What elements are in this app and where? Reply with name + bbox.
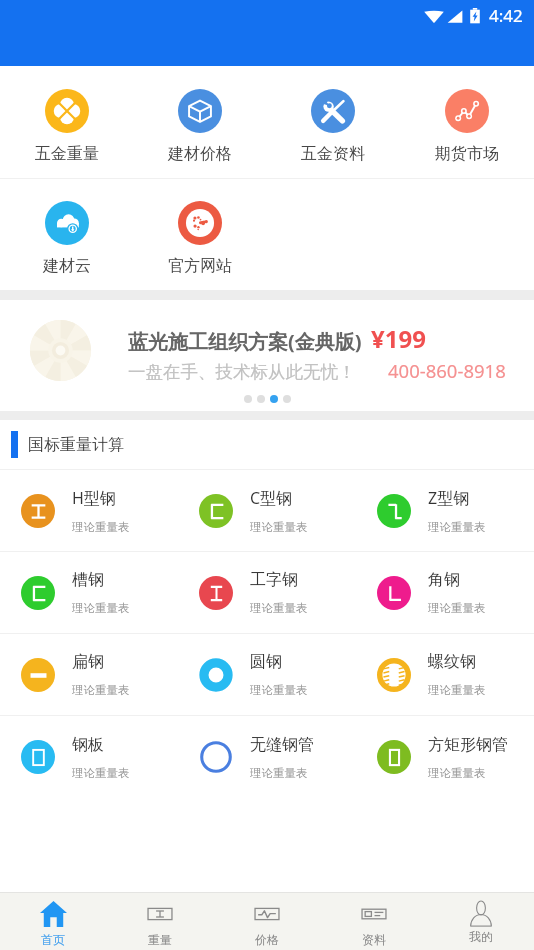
staticText: 理论重量表 [428,683,486,697]
staticText: 国标重量计算 [28,435,124,455]
staticText: 理论重量表 [72,601,130,615]
button[interactable]: 五金重量 [0,66,133,164]
button[interactable]: H型钢 [0,470,178,551]
staticText: Z型钢 [428,487,470,509]
button[interactable]: 槽钢 [0,552,178,633]
staticText: C型钢 [250,487,293,509]
staticText: 无缝钢管 [250,735,314,755]
staticText: ¥199 [371,322,426,355]
staticText: 角钢 [428,570,460,590]
staticText: 4:42 [489,4,523,27]
staticText: 重量 [148,932,172,947]
button[interactable]: 圆钢 [178,634,356,715]
staticText: 槽钢 [72,570,104,590]
button[interactable]: 首页 [0,893,106,950]
staticText: 建材云 [43,256,91,276]
staticText: 圆钢 [250,652,282,672]
staticText: 期货市场 [435,144,499,164]
staticText: 蓝光施工组织方案(金典版) [128,328,362,355]
staticText: 首页 [41,932,65,947]
button[interactable]: 扁钢 [0,634,178,715]
button[interactable]: 资料 [320,893,427,950]
staticText: 理论重量表 [72,520,130,534]
staticText: 理论重量表 [250,683,308,697]
staticText: 一盘在手、技术标从此无忧！ [128,361,356,383]
button[interactable]: 期货市场 [400,66,534,164]
button[interactable]: 重量 [106,893,213,950]
button[interactable]: 工字钢 [178,552,356,633]
staticText: 五金资料 [301,144,365,164]
button[interactable]: 方矩形钢管 [356,716,534,798]
staticText: 400-860-8918 [388,358,506,383]
staticText: 建材价格 [168,144,232,164]
button[interactable]: 五金资料 [266,66,400,164]
staticText: 方矩形钢管 [428,735,508,755]
staticText: 理论重量表 [72,683,130,697]
staticText: 官方网站 [168,256,232,276]
staticText: 理论重量表 [250,601,308,615]
staticText: 理论重量表 [250,520,308,534]
button[interactable]: 无缝钢管 [178,716,356,798]
staticText: 理论重量表 [428,766,486,780]
button[interactable]: C型钢 [178,470,356,551]
button[interactable]: 建材价格 [133,66,266,164]
button[interactable]: 建材云 [0,179,133,276]
staticText: 五金重量 [35,144,99,164]
staticText: 钢板 [72,735,104,755]
button[interactable]: 角钢 [356,552,534,633]
staticText: 我的 [469,929,493,944]
staticText: 螺纹钢 [428,652,476,672]
button[interactable]: 我的 [427,893,534,950]
staticText: 扁钢 [72,652,104,672]
staticText: 理论重量表 [428,520,486,534]
button[interactable]: Z型钢 [356,470,534,551]
staticText: 工字钢 [250,570,298,590]
button[interactable]: 螺纹钢 [356,634,534,715]
staticText: 理论重量表 [428,601,486,615]
staticText: H型钢 [72,487,116,509]
staticText: 价格 [255,932,279,947]
button[interactable]: 价格 [213,893,320,950]
button[interactable]: 钢板 [0,716,178,798]
staticText: 理论重量表 [72,766,130,780]
button[interactable]: 官方网站 [133,179,267,276]
staticText: 理论重量表 [250,766,308,780]
staticText: 资料 [362,932,386,947]
